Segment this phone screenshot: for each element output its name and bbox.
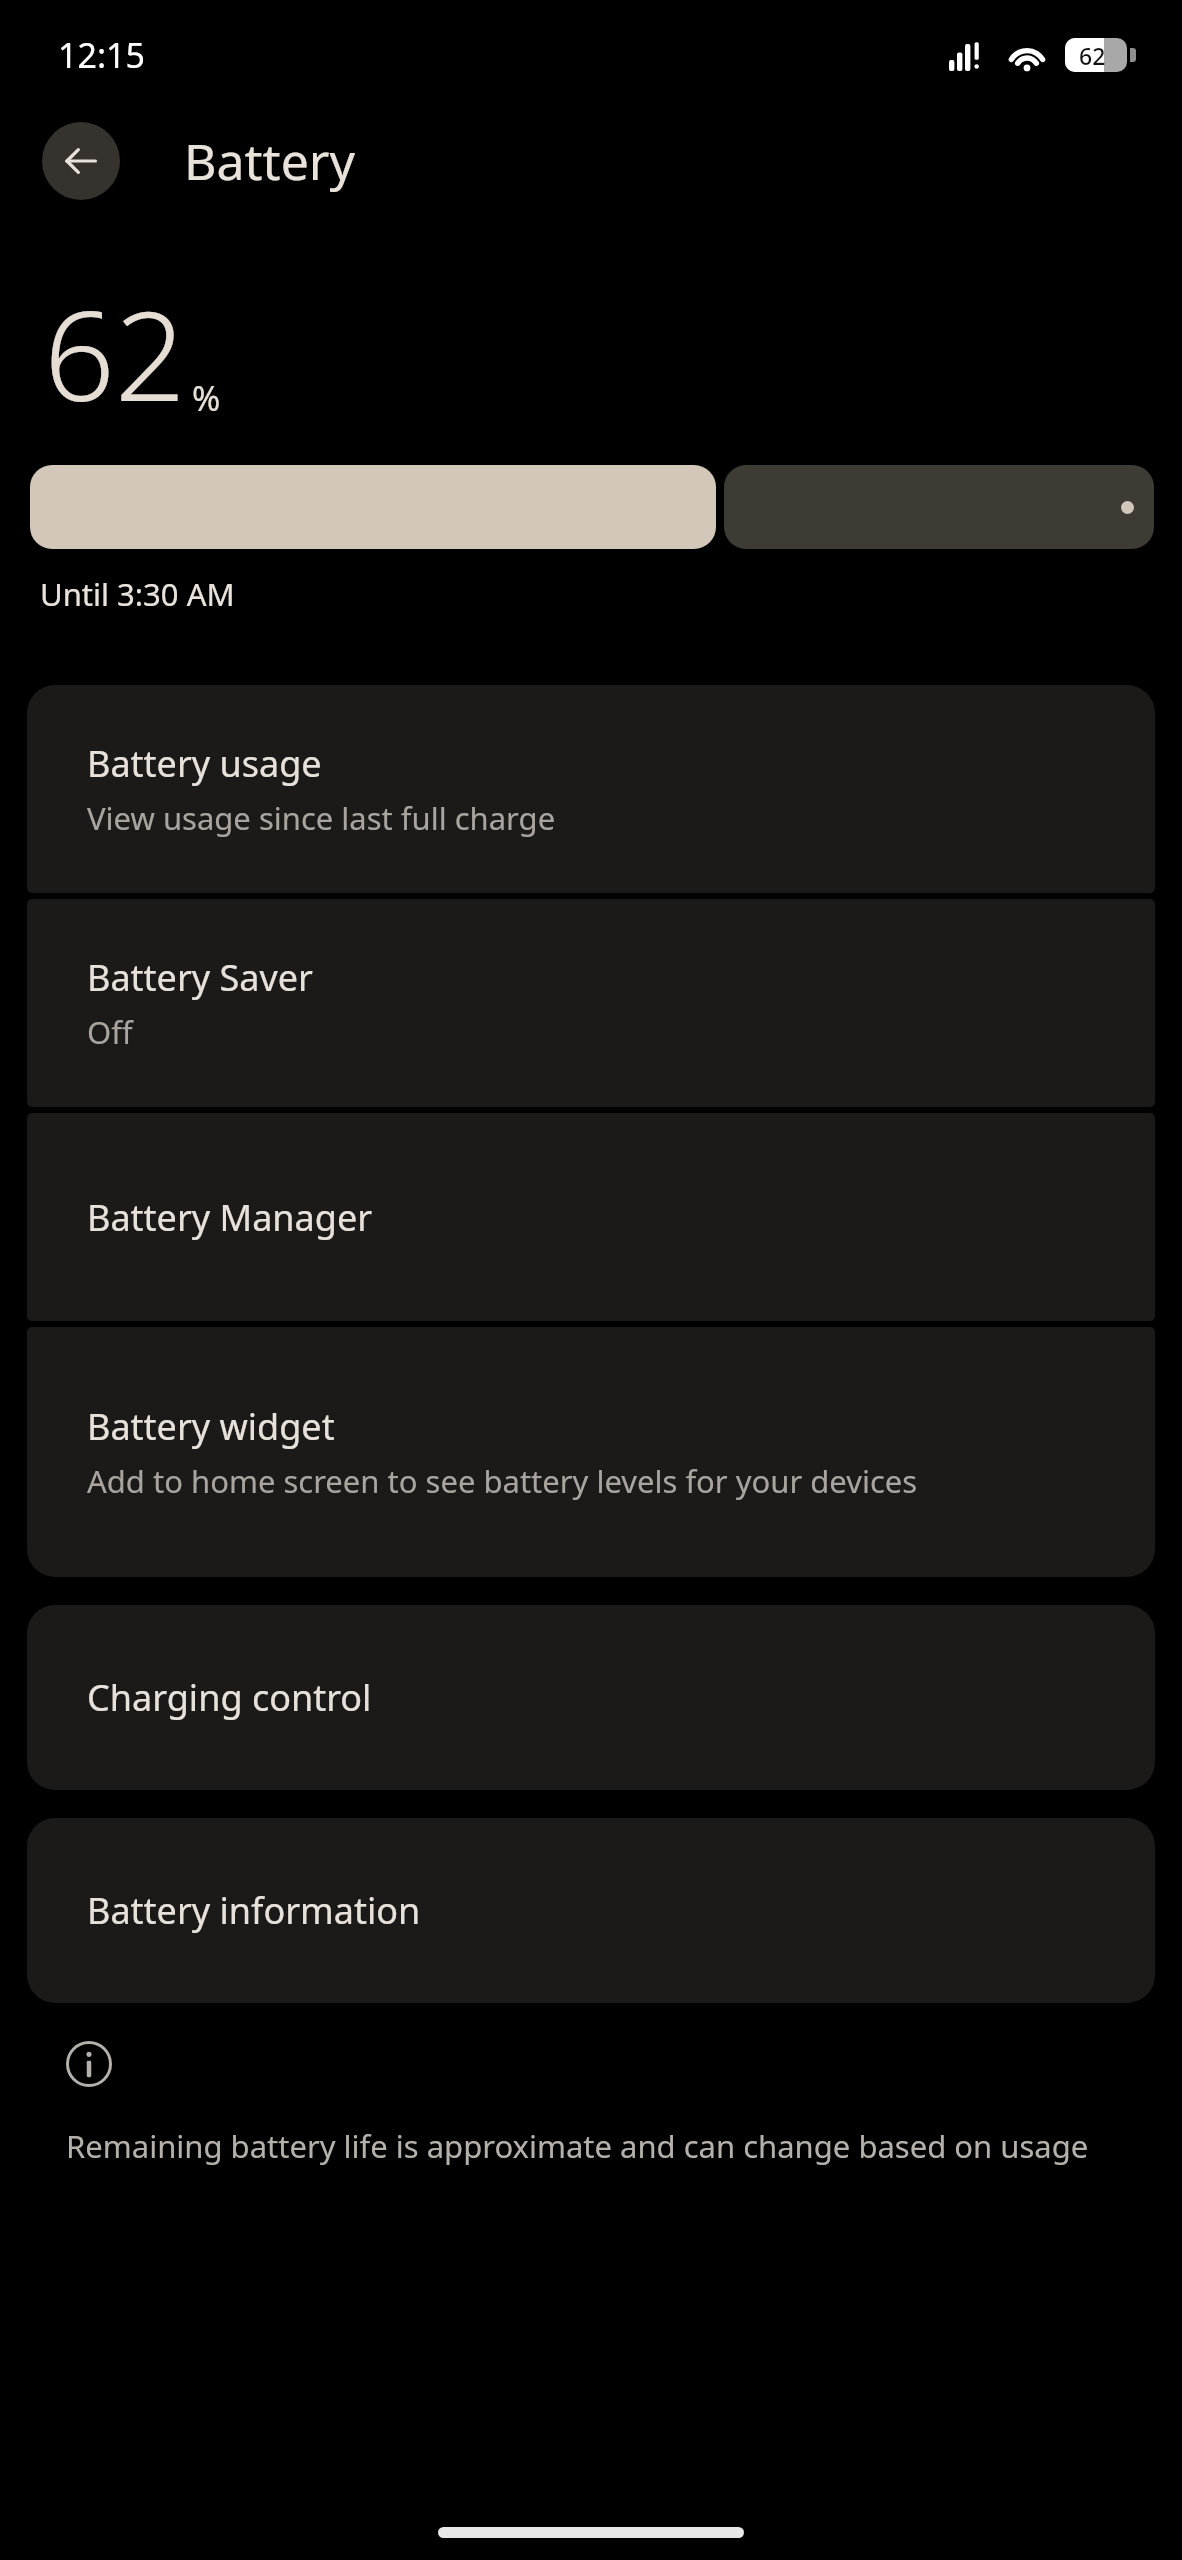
staticText: 62 [1079, 40, 1106, 71]
button[interactable]: Battery information [27, 1818, 1155, 2003]
staticText: View usage since last full charge [87, 797, 556, 839]
staticText: Until 3:30 AM [40, 573, 235, 615]
staticText: 62 [44, 268, 186, 437]
staticText: Battery widget [87, 1402, 335, 1451]
staticText: Remaining battery life is approximate an… [66, 2125, 1089, 2167]
button[interactable]: Battery usage [27, 685, 1155, 893]
staticText: Battery Manager [87, 1193, 373, 1242]
button[interactable]: Battery Manager [27, 1113, 1155, 1321]
button[interactable]: Charging control [27, 1605, 1155, 1790]
staticText: % [192, 375, 221, 421]
staticText: Charging control [87, 1673, 372, 1722]
staticText: Battery [184, 127, 355, 195]
staticText: Off [87, 1011, 133, 1053]
staticText: Battery Saver [87, 953, 313, 1002]
staticText: 12:15 [58, 32, 145, 78]
staticText: Add to home screen to see battery levels… [87, 1460, 918, 1502]
button[interactable]: Battery Saver [27, 899, 1155, 1107]
staticText: Battery information [87, 1886, 421, 1935]
button[interactable]: Battery widget [27, 1327, 1155, 1577]
staticText: Battery usage [87, 739, 322, 788]
button[interactable]: Back [42, 122, 120, 200]
